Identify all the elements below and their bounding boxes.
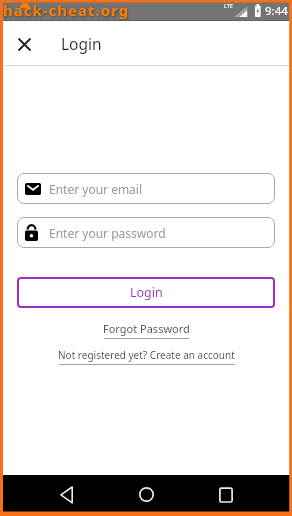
staticText: Login [130,284,163,301]
button[interactable] [26,475,106,516]
button[interactable]: Forgot Password [103,321,190,339]
staticText: hack-cheat.org [3,0,130,20]
button[interactable]: Enter your email [17,173,275,204]
button[interactable]: Not registered yet? Create an account [58,348,235,365]
staticText: Not registered yet? Create an account [58,348,235,362]
button[interactable] [186,475,266,516]
staticText: Forgot Password [103,321,190,336]
button[interactable]: Login [17,277,275,308]
staticText: Enter your email [49,181,143,197]
button[interactable]: Enter your password [17,217,275,248]
staticText: 9:44 [265,3,288,19]
button[interactable] [2,22,46,66]
button[interactable] [106,475,186,516]
staticText: LTE [224,2,233,9]
staticText: Login [61,33,102,54]
staticText: Enter your password [49,225,166,241]
